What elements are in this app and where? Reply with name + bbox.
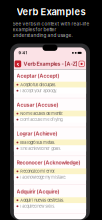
staticText: See verbs in context with real-life exam… <box>12 21 89 38</box>
button[interactable]: Pronounce <box>79 61 85 67</box>
staticText: Aceptar (Accept) <box>16 73 59 79</box>
staticText: Adquirí nuevas destrezas. <box>20 198 64 203</box>
button[interactable]: I acknowledge my mistake. <box>14 174 86 180</box>
button[interactable]: Adquirí nuevas destrezas. <box>14 197 86 203</box>
button[interactable]: Ella logró sus metas. <box>14 139 86 145</box>
button[interactable]: I accept your apology. <box>14 88 86 94</box>
staticText: Acepto tus disculpas. <box>20 82 56 87</box>
button[interactable]: Back <box>15 60 21 67</box>
staticText: Reconocer (Acknowledge) <box>16 159 80 166</box>
staticText: Reconozco mi error. <box>20 169 55 174</box>
staticText: Verb Examples - [A-Z] <box>23 61 77 67</box>
button[interactable]: Acepto tus disculpas. <box>14 82 86 88</box>
staticText: 9:41 <box>18 50 27 55</box>
button[interactable]: No me acuses de mentir. <box>14 111 86 117</box>
staticText: Acusar (Accuse) <box>16 102 58 108</box>
staticText: Adquirir (Acquire) <box>16 188 59 195</box>
staticText: I acknowledge my mistake. <box>20 175 66 180</box>
button[interactable]: She achieved her goals. <box>14 145 86 151</box>
staticText: I accept your apology. <box>20 88 57 93</box>
staticText: I acquired new skills. <box>20 204 55 209</box>
staticText: She achieved her goals. <box>20 146 61 151</box>
staticText: Lograr (Achieve) <box>16 131 57 137</box>
button[interactable]: I acquired new skills. <box>14 203 86 209</box>
staticText: Verb Examples <box>16 6 85 17</box>
staticText: Don't accuse me of lying. <box>20 117 63 122</box>
staticText: No me acuses de mentir. <box>20 111 63 116</box>
staticText: Ella logró sus metas. <box>20 140 55 145</box>
button[interactable]: Don't accuse me of lying. <box>14 117 86 123</box>
staticText: ‹ <box>16 59 19 68</box>
button[interactable]: Reconozco mi error. <box>14 168 86 174</box>
